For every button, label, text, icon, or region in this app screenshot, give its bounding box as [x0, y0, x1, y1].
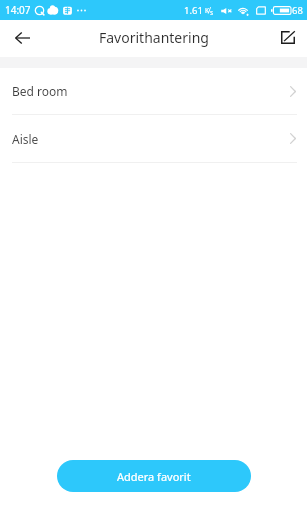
staticText: 1.61 — [184, 4, 203, 17]
button[interactable]: Back — [4, 21, 40, 57]
button[interactable]: Addera favorit — [57, 460, 251, 492]
button[interactable]: Aisle — [0, 115, 307, 162]
button[interactable]: Bed room — [0, 68, 307, 114]
staticText: s — [210, 8, 214, 17]
staticText: Favorithantering — [99, 28, 209, 47]
staticText: 68 — [292, 4, 303, 17]
staticText: Bed room — [12, 83, 68, 99]
staticText: K — [205, 6, 210, 15]
staticText: Aisle — [12, 131, 39, 147]
button[interactable]: Edit — [271, 21, 307, 57]
staticText: 14:07 — [5, 3, 31, 17]
staticText: Addera favorit — [117, 469, 191, 484]
